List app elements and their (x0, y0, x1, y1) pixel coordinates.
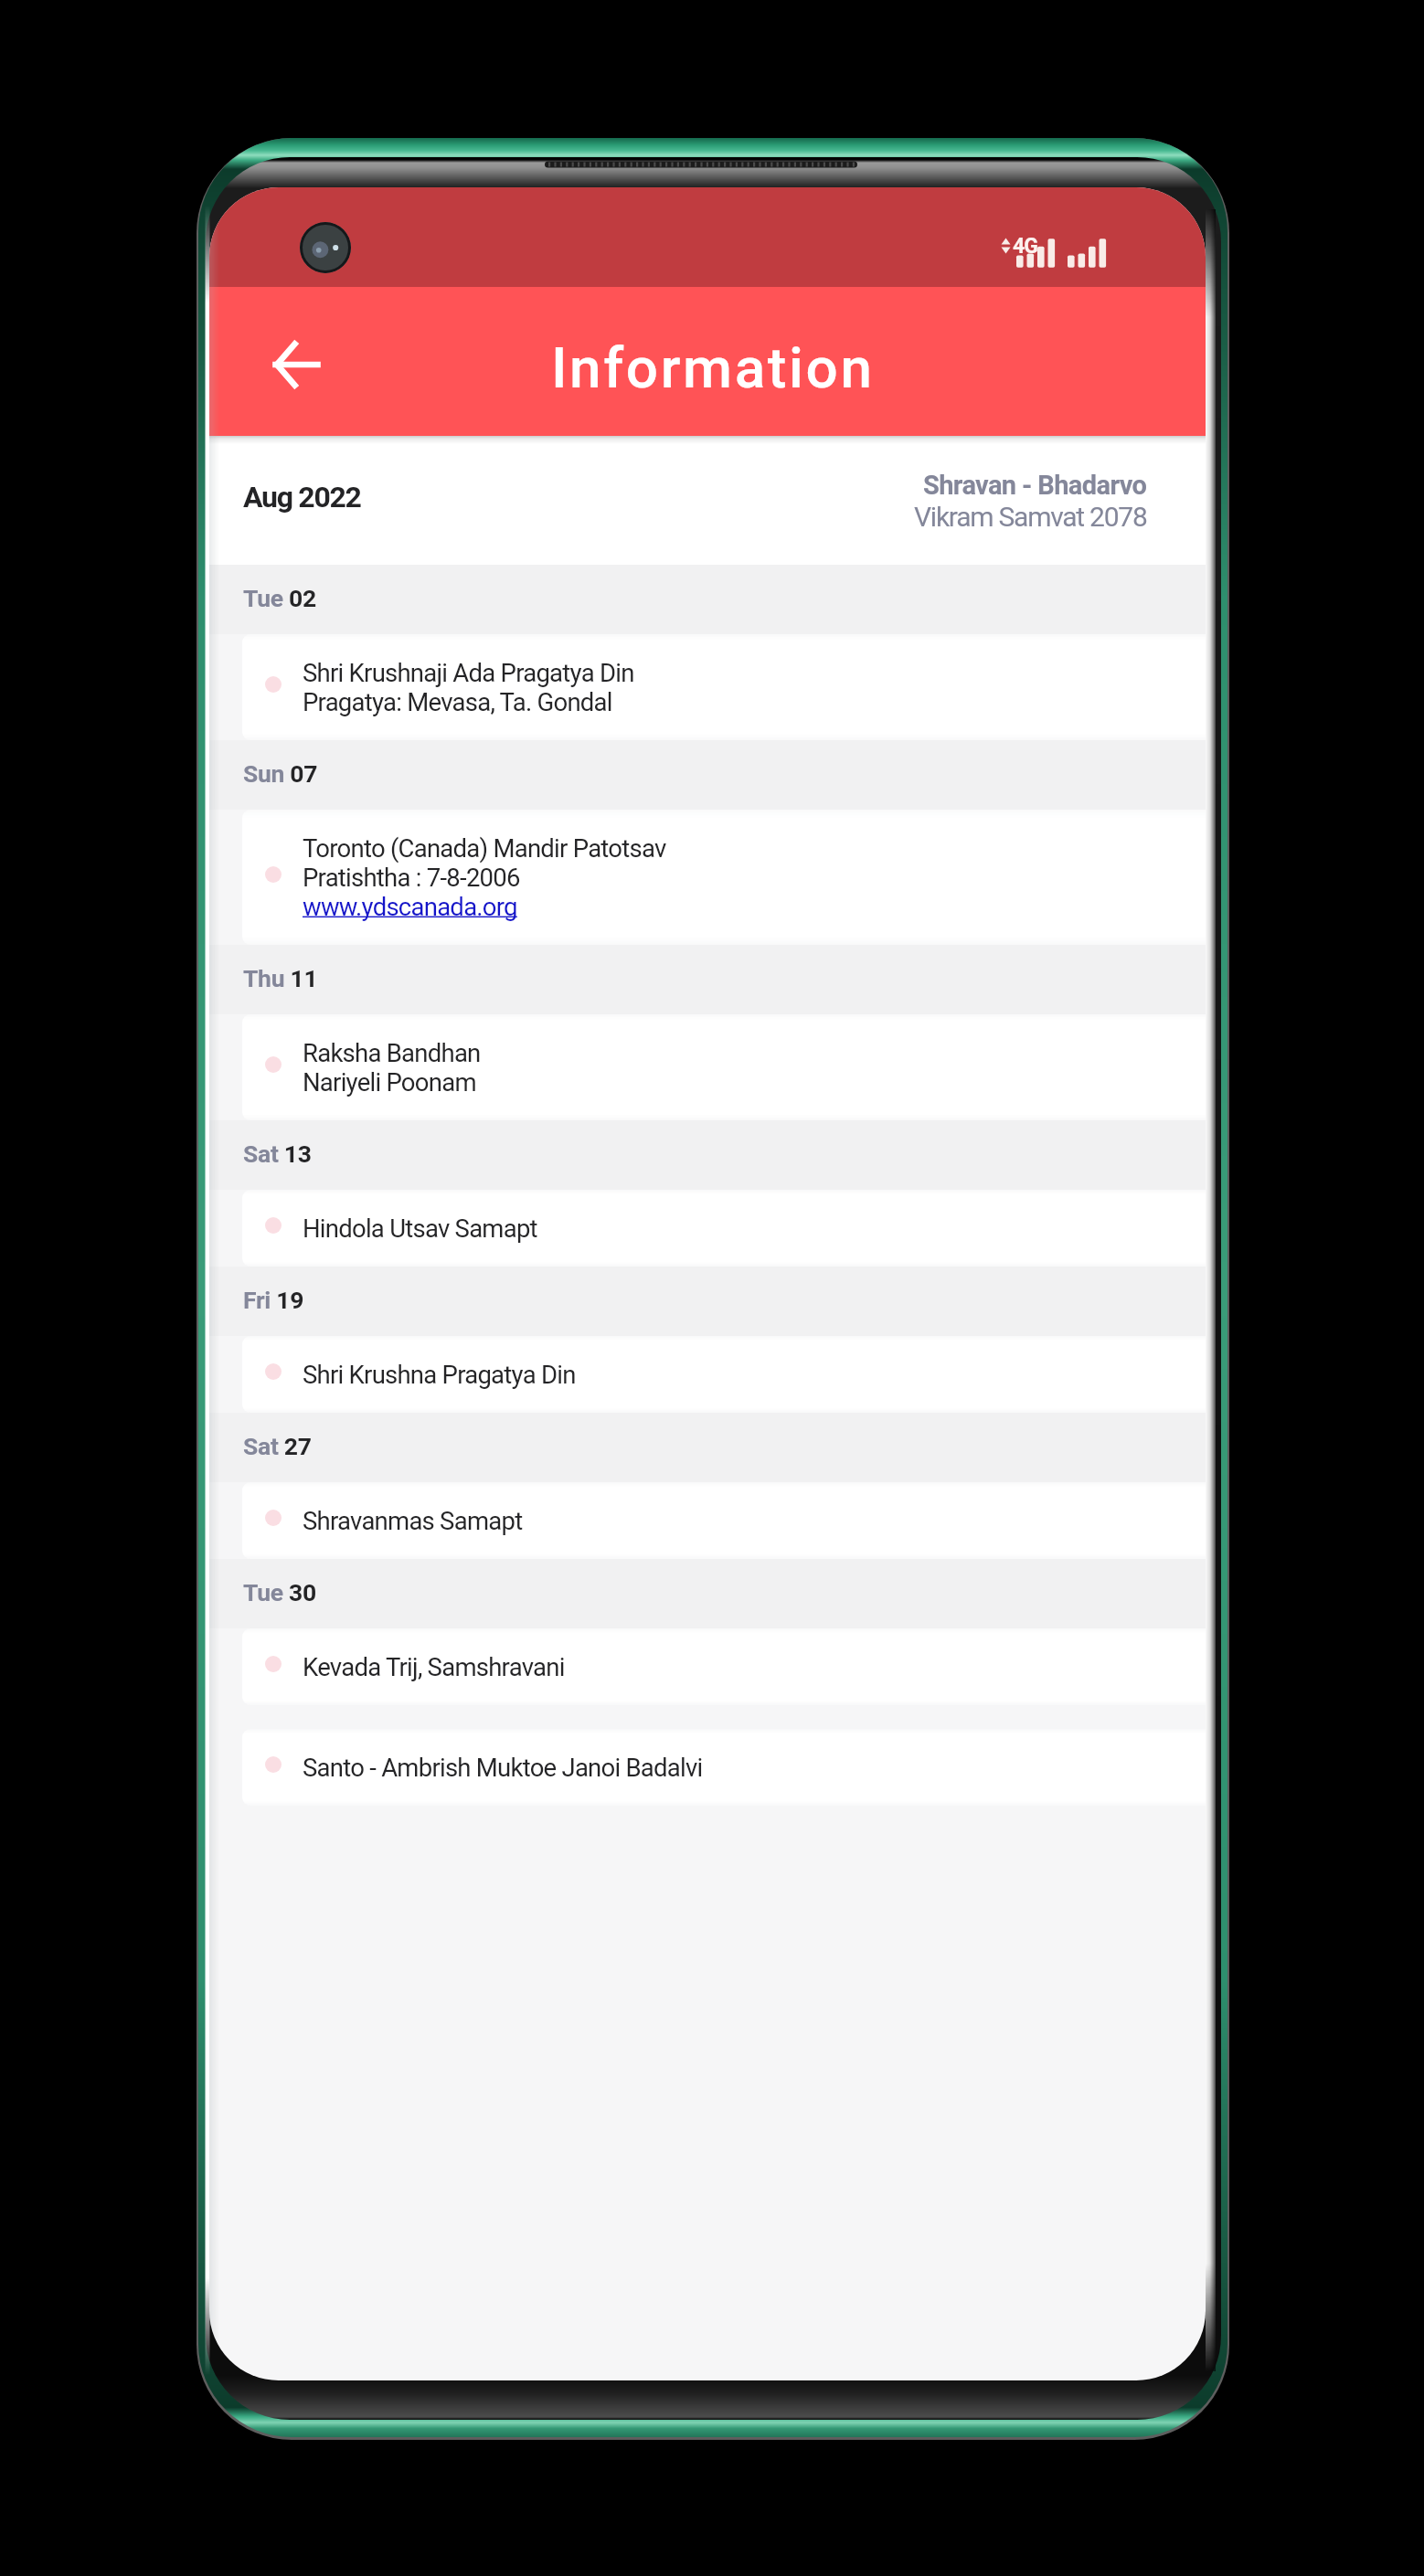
staticText: Sat 13 (243, 1140, 312, 1168)
staticText: Nariyeli Poonam (303, 1067, 476, 1097)
staticText: 4G (1013, 234, 1037, 259)
staticText: Shri Krushna Pragatya Din (303, 1360, 576, 1389)
button[interactable]: Shri Krushnaji Ada Pragatya Din (242, 634, 1206, 740)
staticText: Kevada Trij, Samshravani (303, 1652, 565, 1681)
staticText: Shravanmas Samapt (303, 1506, 523, 1535)
staticText: Tue 02 (243, 584, 316, 612)
button[interactable]: Raksha Bandhan (242, 1014, 1206, 1120)
staticText: Sun 07 (243, 759, 318, 788)
staticText: Fri 19 (243, 1286, 304, 1314)
button[interactable]: Toronto (Canada) Mandir Patotsav (242, 810, 1206, 945)
staticText: Aug 2022 (243, 480, 361, 514)
button[interactable]: Shravanmas Samapt (242, 1482, 1206, 1559)
staticText: www.ydscanada.org (303, 892, 517, 921)
staticText: Hindola Utsav Samapt (303, 1214, 537, 1243)
staticText: Information (551, 334, 875, 401)
button[interactable]: Back (260, 328, 333, 401)
staticText: Pratishtha : 7-8-2006 (303, 863, 520, 892)
staticText: Tue 30 (243, 1578, 316, 1606)
staticText: Pragatya: Mevasa, Ta. Gondal (303, 687, 612, 716)
staticText: Shravan - Bhadarvo (923, 470, 1147, 501)
button[interactable]: Kevada Trij, Samshravani (242, 1628, 1206, 1705)
staticText: Vikram Samvat 2078 (914, 501, 1147, 533)
staticText: Toronto (Canada) Mandir Patotsav (303, 833, 666, 863)
staticText: Thu 11 (243, 964, 318, 992)
button[interactable]: Shri Krushna Pragatya Din (242, 1336, 1206, 1413)
button[interactable]: Hindola Utsav Samapt (242, 1190, 1206, 1267)
button[interactable]: Santo - Ambrish Muktoe Janoi Badalvi (242, 1729, 1206, 1806)
staticText: Santo - Ambrish Muktoe Janoi Badalvi (303, 1753, 703, 1782)
staticText: Shri Krushnaji Ada Pragatya Din (303, 658, 634, 687)
staticText: Sat 27 (243, 1432, 312, 1460)
staticText: Raksha Bandhan (303, 1038, 481, 1067)
